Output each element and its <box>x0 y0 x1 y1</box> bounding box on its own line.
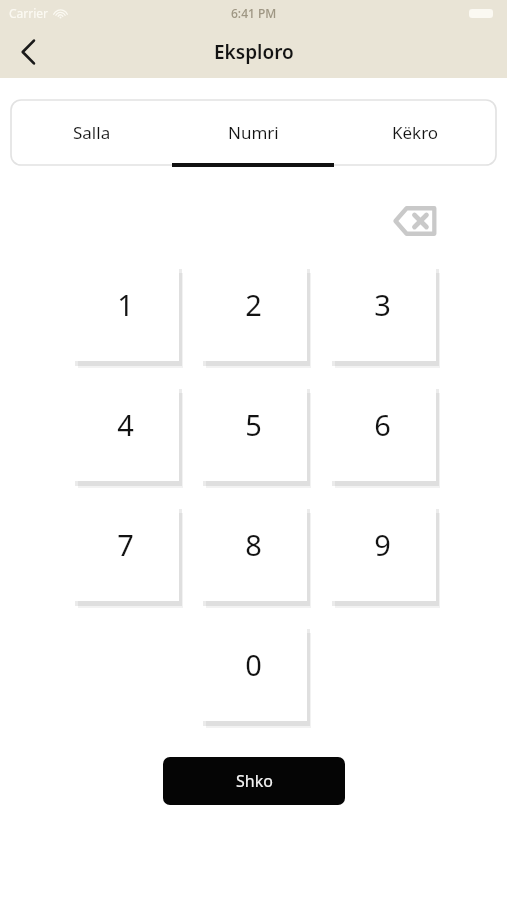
staticText: 0 <box>245 645 262 684</box>
button[interactable]: Salla <box>11 100 172 165</box>
staticText: 8 <box>245 525 262 564</box>
staticText: Carrier <box>9 5 49 21</box>
button[interactable]: 0 <box>200 624 307 721</box>
staticText: Numri <box>228 121 279 144</box>
staticText: 9 <box>374 525 391 564</box>
staticText: 6 <box>374 405 391 444</box>
staticText: Shko <box>236 770 273 792</box>
button[interactable]: Shko <box>163 757 345 805</box>
button[interactable]: 5 <box>200 384 307 481</box>
staticText: 6:41 PM <box>231 5 277 21</box>
button[interactable]: 1 <box>72 264 179 361</box>
button[interactable]: 8 <box>200 504 307 601</box>
staticText: Eksploro <box>214 39 294 65</box>
staticText: 1 <box>117 285 134 324</box>
button[interactable]: 6 <box>329 384 436 481</box>
button[interactable]: 9 <box>329 504 436 601</box>
button[interactable]: 3 <box>329 264 436 361</box>
staticText: Salla <box>73 121 111 144</box>
staticText: Këkro <box>392 121 439 144</box>
button[interactable]: Backspace <box>392 203 438 239</box>
button[interactable]: Back <box>6 30 50 74</box>
staticText: 5 <box>245 405 262 444</box>
staticText: 4 <box>117 405 134 444</box>
button[interactable]: Këkro <box>334 100 496 165</box>
staticText: 2 <box>245 285 262 324</box>
button[interactable]: 2 <box>200 264 307 361</box>
button[interactable]: 4 <box>72 384 179 481</box>
button[interactable]: 7 <box>72 504 179 601</box>
button[interactable]: Numri <box>172 100 334 165</box>
staticText: 3 <box>374 285 391 324</box>
staticText: 7 <box>117 525 134 564</box>
